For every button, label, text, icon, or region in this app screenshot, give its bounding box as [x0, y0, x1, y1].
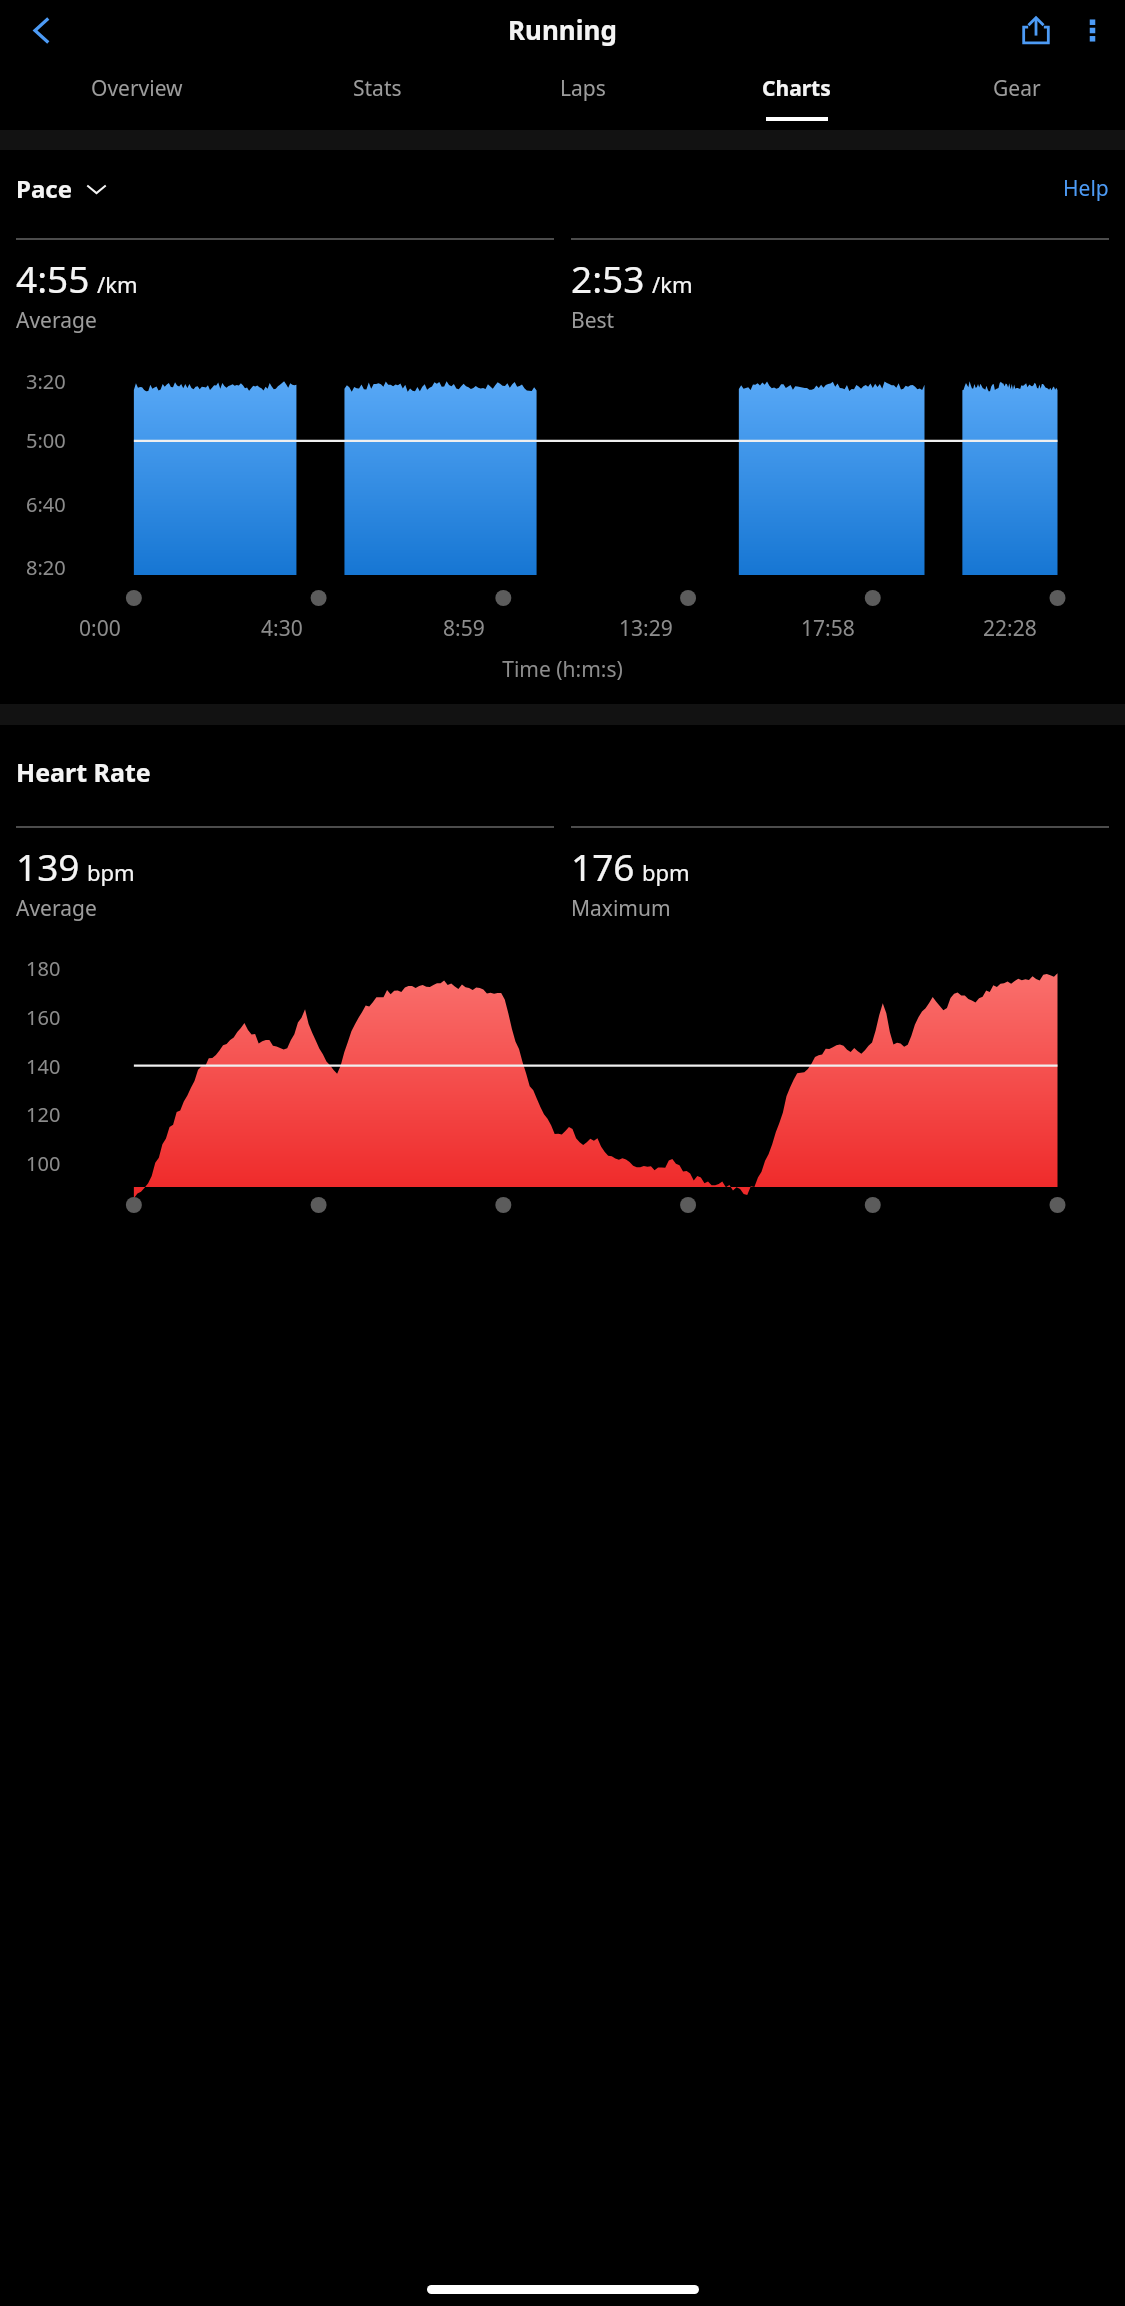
staticText: 139 — [16, 841, 80, 891]
button[interactable]: Help — [1063, 174, 1109, 203]
staticText: Maximum — [571, 894, 671, 923]
staticText: 0:00 — [79, 614, 121, 643]
staticText: 160 — [26, 1004, 61, 1031]
button[interactable]: Charts — [684, 59, 909, 130]
staticText: 176 — [571, 841, 635, 891]
staticText: 5:00 — [26, 427, 66, 454]
staticText: 22:28 — [983, 614, 1037, 643]
staticText: 2:53 — [571, 253, 645, 303]
button[interactable]: Laps — [481, 59, 684, 130]
staticText: bpm — [642, 857, 690, 887]
staticText: 180 — [26, 955, 61, 982]
staticText: Overview — [91, 74, 183, 103]
staticText: Laps — [560, 74, 606, 103]
staticText: Time (h:m:s) — [0, 655, 1125, 684]
button[interactable]: Back — [12, 1, 70, 59]
staticText: 4:30 — [261, 614, 303, 643]
staticText: Running — [508, 12, 617, 47]
button[interactable]: Pace — [16, 172, 107, 205]
button[interactable]: Overview — [0, 59, 274, 130]
staticText: Help — [1063, 174, 1109, 203]
button[interactable]: Stats — [274, 59, 481, 130]
staticText: Gear — [993, 74, 1041, 103]
staticText: 120 — [26, 1101, 61, 1128]
button[interactable]: More options — [1065, 3, 1119, 57]
staticText: bpm — [87, 857, 135, 887]
staticText: 100 — [26, 1150, 61, 1177]
staticText: 4:55 — [16, 253, 90, 303]
staticText: 17:58 — [801, 614, 855, 643]
staticText: Heart Rate — [16, 755, 151, 789]
staticText: 140 — [26, 1053, 61, 1080]
staticText: Stats — [353, 74, 402, 103]
staticText: /km — [97, 269, 138, 299]
staticText: Charts — [762, 74, 831, 103]
staticText: Average — [16, 894, 97, 923]
staticText: 8:59 — [443, 614, 485, 643]
staticText: 6:40 — [26, 491, 66, 518]
staticText: Best — [571, 306, 615, 335]
staticText: /km — [652, 269, 693, 299]
staticText: 13:29 — [619, 614, 673, 643]
staticText: Average — [16, 306, 97, 335]
button[interactable]: Gear — [909, 59, 1125, 130]
staticText: Pace — [16, 172, 72, 205]
staticText: 3:20 — [26, 368, 66, 395]
button[interactable]: Share — [1007, 1, 1065, 59]
staticText: 8:20 — [26, 554, 66, 575]
